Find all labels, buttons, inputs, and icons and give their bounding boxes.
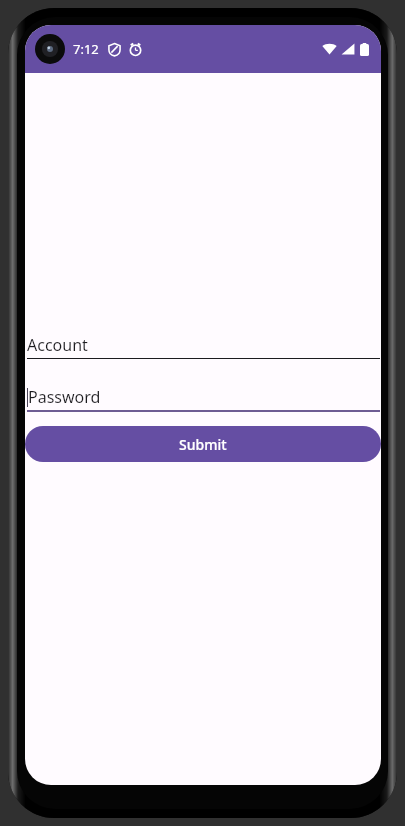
staticText: 7:12	[73, 40, 99, 58]
staticText: Password	[28, 386, 101, 408]
button[interactable]: Submit	[25, 426, 381, 462]
button[interactable]: Password	[25, 383, 381, 412]
staticText: Submit	[179, 435, 227, 454]
staticText: Account	[27, 334, 88, 356]
button[interactable]: Account	[25, 331, 381, 359]
